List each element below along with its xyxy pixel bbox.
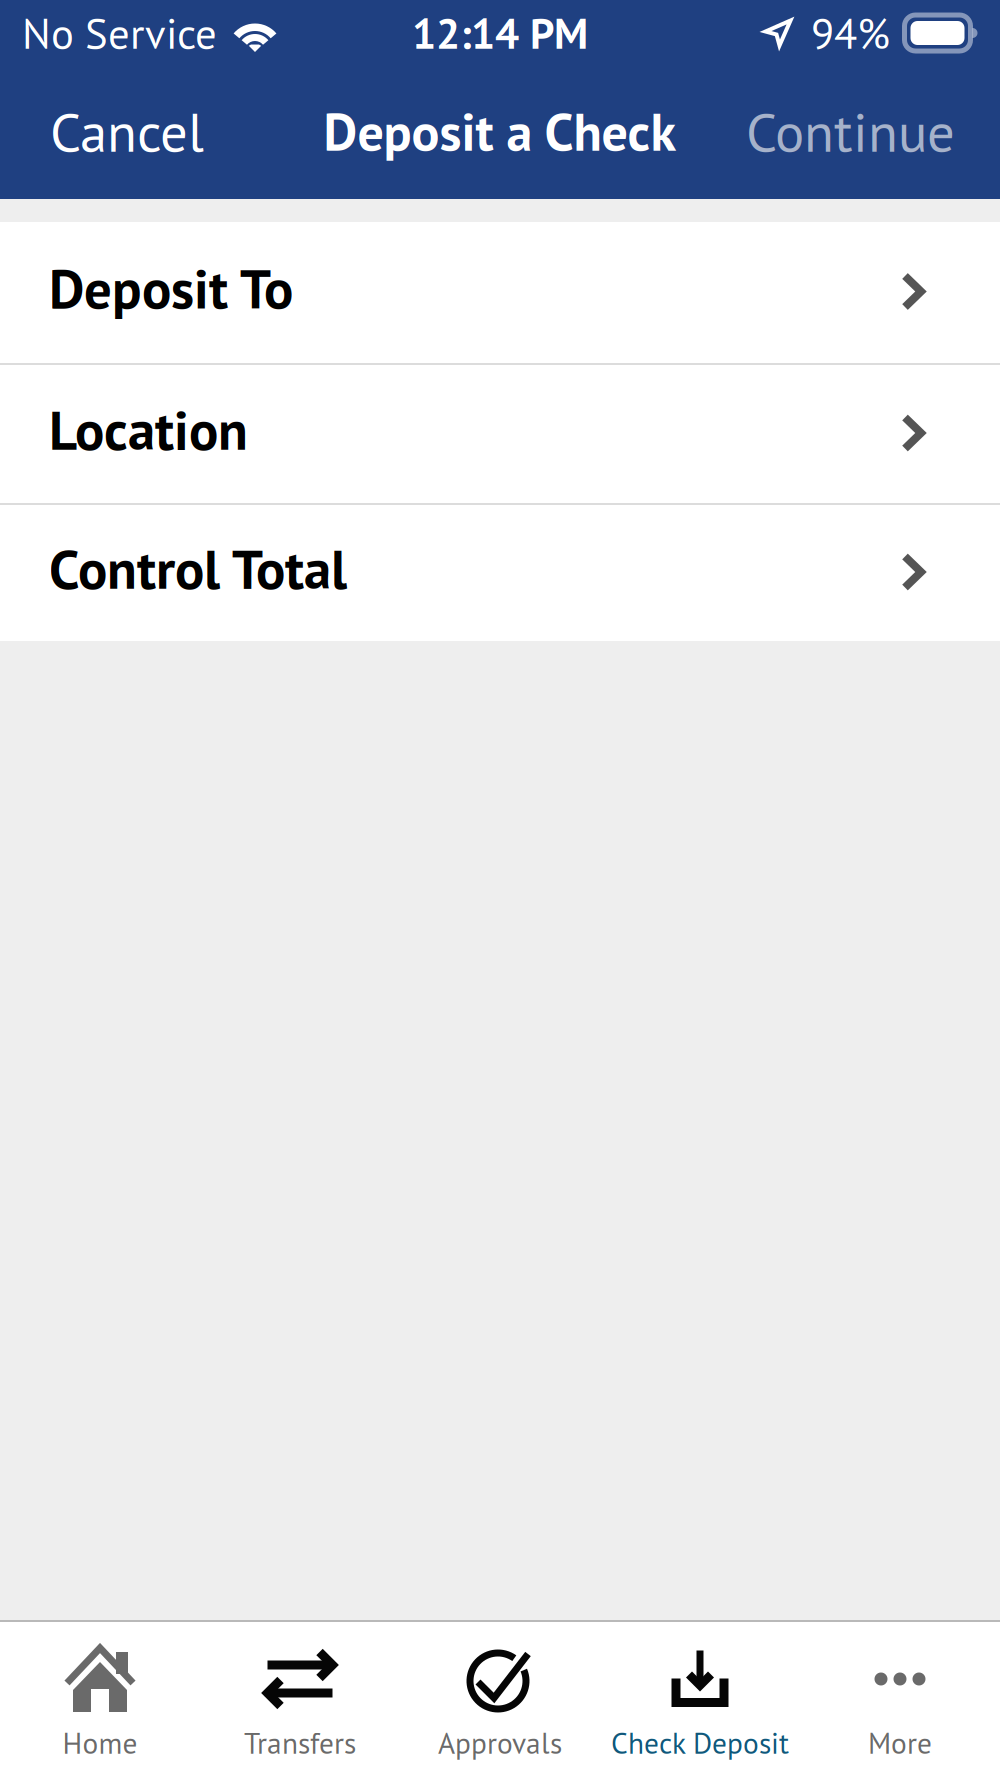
staticText: More [868,1724,932,1762]
button[interactable]: More [800,1622,1000,1778]
staticText: Deposit To [49,253,293,323]
staticText: Transfers [244,1724,356,1762]
button[interactable]: Transfers [200,1622,400,1778]
staticText: 94% [811,5,890,61]
button[interactable]: Deposit To [0,222,1000,363]
staticText: Home [62,1724,137,1762]
staticText: Deposit a Check [323,98,676,165]
staticText: Approvals [438,1724,562,1762]
staticText: Continue [746,96,955,167]
staticText: No Service [22,5,217,61]
button[interactable]: Cancel [50,74,230,189]
button[interactable]: Home [0,1622,200,1778]
staticText: 12:14 PM [412,5,588,61]
button[interactable]: Location [0,365,1000,503]
button[interactable]: Approvals [400,1622,600,1778]
staticText: Cancel [50,96,204,167]
staticText: Location [49,394,248,465]
staticText: Control Total [49,533,347,604]
button[interactable]: Continue [720,74,955,189]
button[interactable]: Control Total [0,505,1000,641]
staticText: Check Deposit [611,1724,789,1762]
button[interactable]: Check Deposit [600,1622,800,1778]
